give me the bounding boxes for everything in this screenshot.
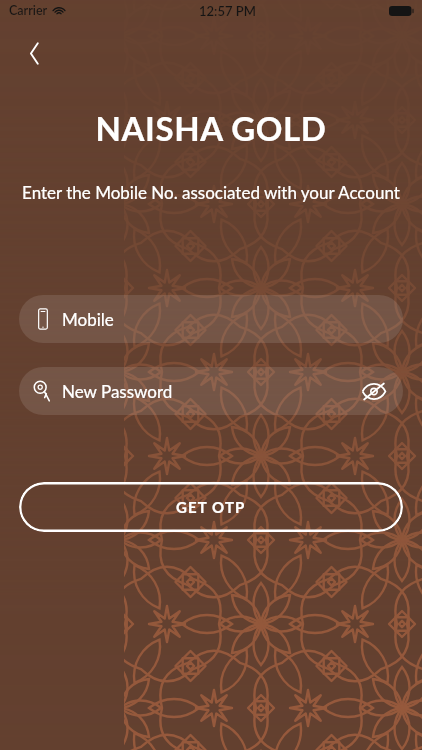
staticText: Enter the Mobile No. associated with you… (0, 182, 422, 202)
button[interactable]: New Password (19, 367, 403, 415)
button[interactable]: Mobile (19, 295, 403, 343)
staticText: Mobile (62, 309, 114, 329)
button[interactable]: Back (14, 31, 54, 75)
staticText: Carrier (9, 3, 48, 18)
button[interactable]: GET OTP (19, 482, 403, 532)
staticText: NAISHA GOLD (0, 108, 422, 148)
staticText: GET OTP (176, 498, 246, 516)
staticText: New Password (62, 381, 173, 401)
staticText: 12:57 PM (199, 3, 256, 19)
button[interactable]: Show password (359, 376, 389, 406)
